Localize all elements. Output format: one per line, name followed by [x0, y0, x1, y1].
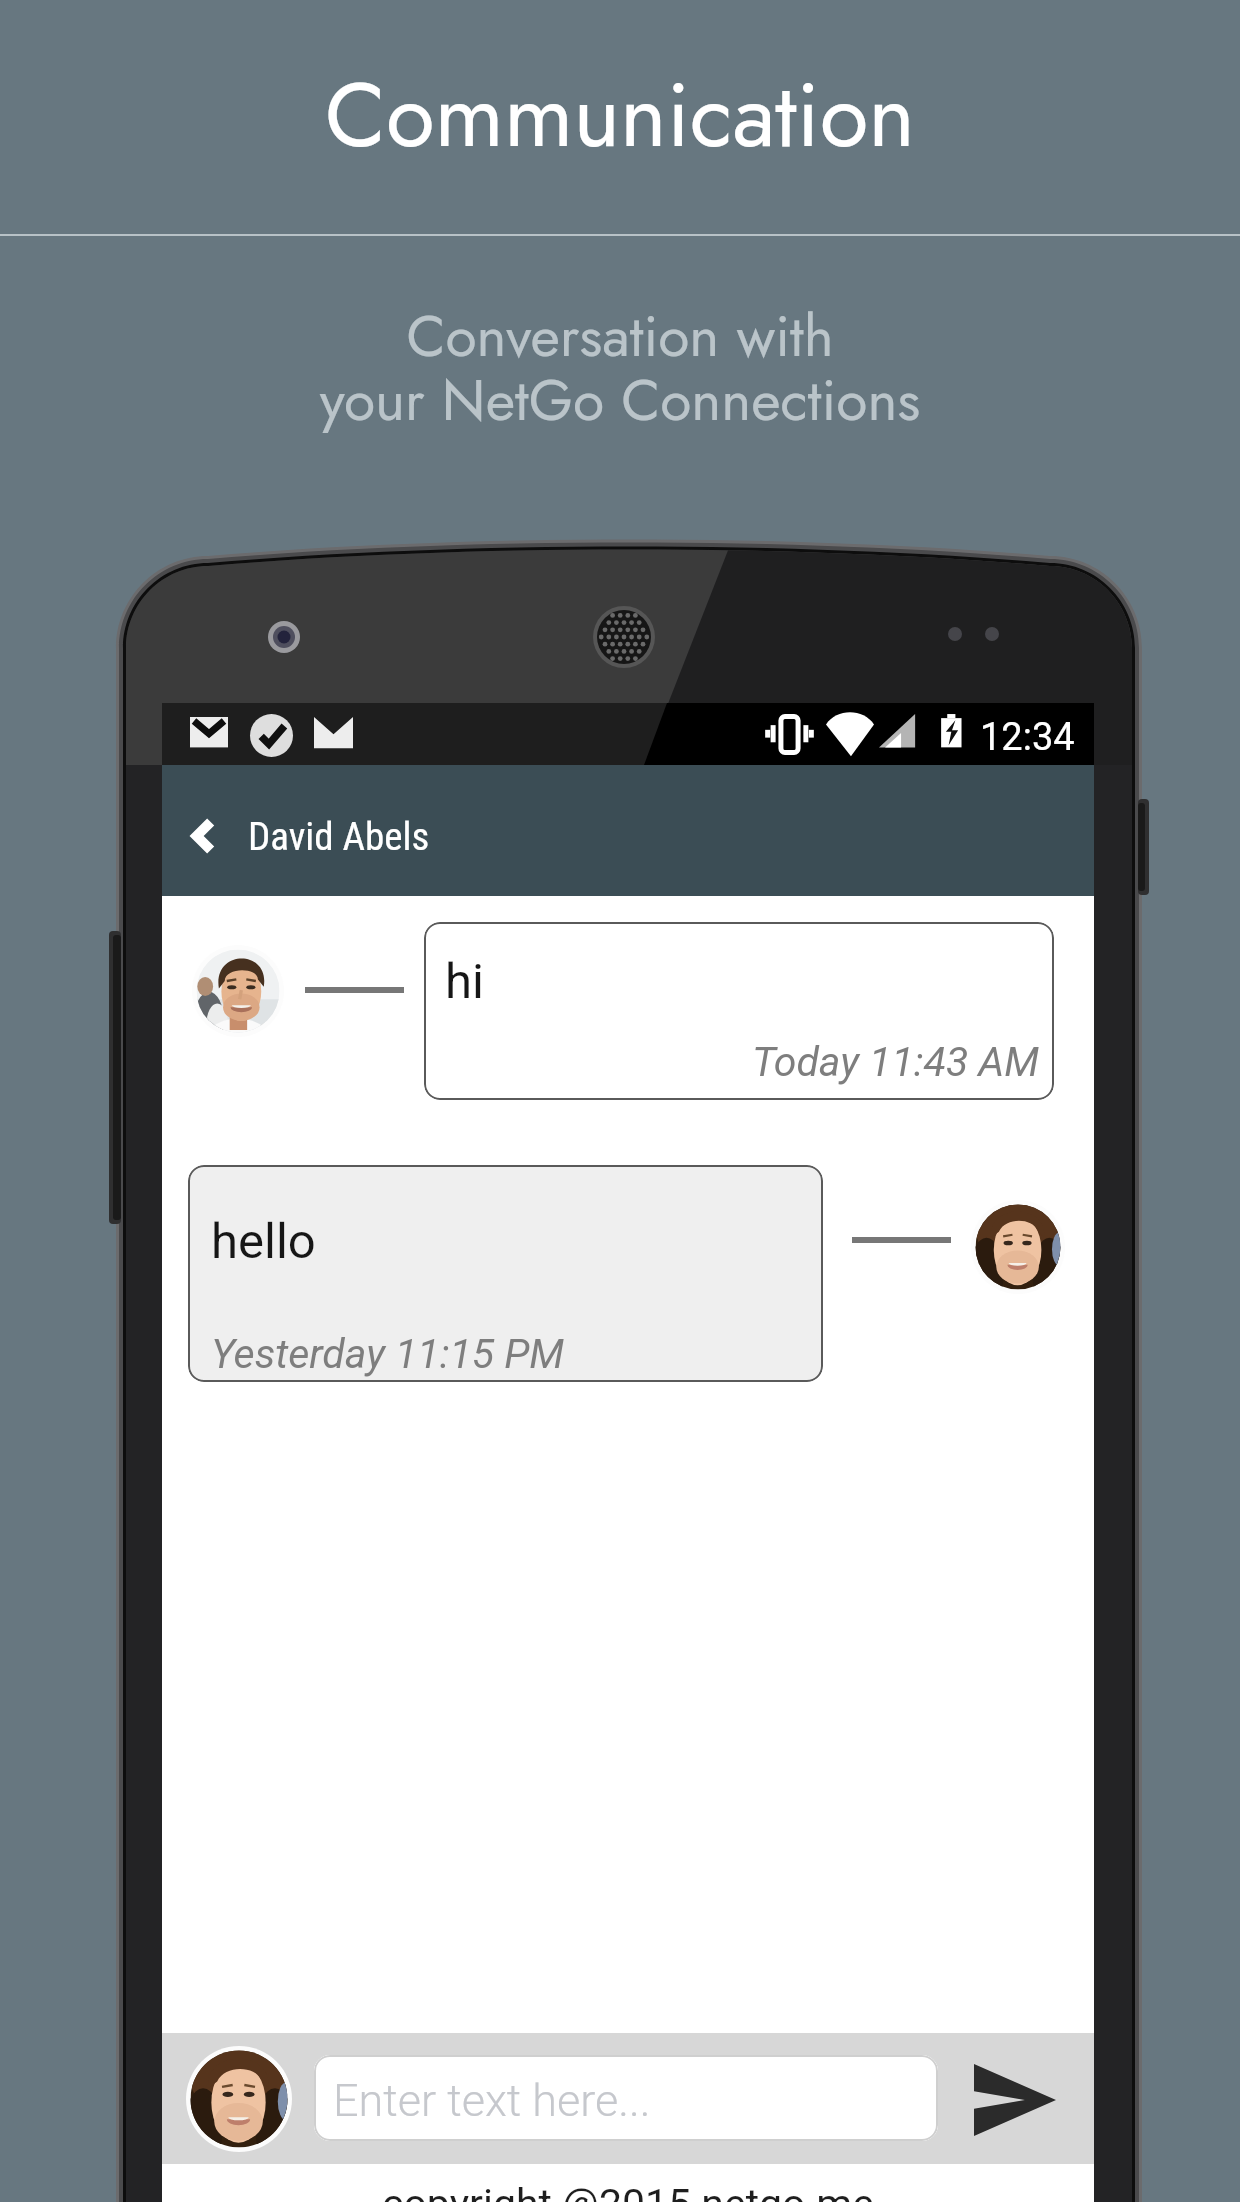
- staticText: hello: [211, 1213, 316, 1270]
- button[interactable]: Enter text here...: [314, 2055, 938, 2141]
- button[interactable]: Send: [974, 2064, 1056, 2136]
- button[interactable]: hello: [188, 1165, 823, 1382]
- button[interactable]: hi: [424, 922, 1054, 1100]
- staticText: Conversation with your NetGo Connections: [0, 295, 1240, 442]
- staticText: Enter text here...: [333, 2074, 651, 2127]
- staticText: Today 11:43 AM: [752, 1038, 1039, 1086]
- staticText: Yesterday 11:15 PM: [211, 1330, 565, 1378]
- staticText: 12:34: [980, 715, 1075, 760]
- staticText: Communication: [0, 51, 1240, 180]
- button[interactable]: Back: [172, 805, 234, 867]
- staticText: copyright @2015 netgo.me: [162, 2180, 1094, 2202]
- staticText: hi: [445, 953, 484, 1010]
- button[interactable]: Your profile photo: [186, 2046, 292, 2152]
- button[interactable]: Your profile photo: [971, 1200, 1065, 1294]
- button[interactable]: David Abels profile photo: [192, 945, 284, 1037]
- staticText: David Abels: [248, 814, 430, 860]
